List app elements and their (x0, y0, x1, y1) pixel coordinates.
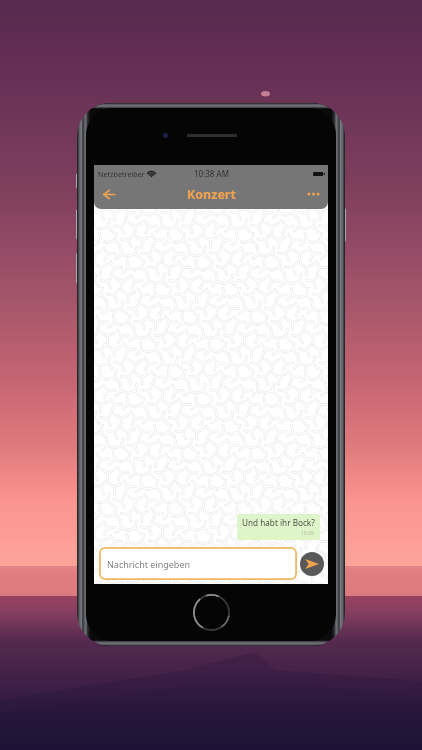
staticText: 10:29 (301, 530, 314, 537)
button[interactable]: Und habt ihr Bock? (237, 514, 320, 540)
button[interactable]: Nachricht eingeben (99, 547, 297, 580)
button[interactable]: Send (300, 552, 324, 576)
staticText: Nachricht eingeben (107, 558, 191, 570)
staticText: Und habt ihr Bock? (242, 517, 315, 528)
staticText: Konzert (187, 186, 236, 203)
button[interactable]: More options (298, 180, 328, 208)
staticText: 10:38 AM (194, 168, 229, 179)
staticText: Netzbetreiber (98, 169, 145, 179)
button[interactable]: Back (94, 180, 124, 208)
